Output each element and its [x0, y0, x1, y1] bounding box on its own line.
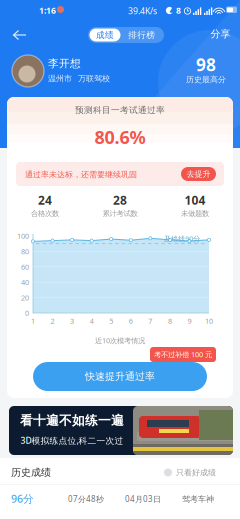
- staticText: 1:16: [39, 5, 56, 16]
- staticText: 20: [21, 293, 29, 303]
- staticText: 24: [38, 192, 52, 208]
- staticText: 排行榜: [128, 29, 155, 40]
- staticText: 0: [25, 308, 29, 318]
- staticText: 快速提升通过率: [85, 370, 155, 383]
- staticText: 9: [187, 316, 191, 326]
- button[interactable]: 成绩: [89, 28, 120, 41]
- staticText: 及格线90分: [164, 234, 200, 244]
- button[interactable]: Back: [8, 24, 34, 46]
- staticText: 考不过补偿 100 元: [154, 349, 212, 359]
- staticText: 只看好成绩: [176, 467, 216, 478]
- staticText: 3: [70, 316, 74, 326]
- staticText: 8: [168, 316, 172, 326]
- staticText: 累计考试数: [102, 209, 137, 218]
- staticText: 去提升: [186, 169, 210, 179]
- staticText: 40: [21, 277, 29, 287]
- button[interactable]: 快速提升通过率: [33, 362, 207, 391]
- button[interactable]: 看十遍不如练一遍: [9, 406, 233, 455]
- staticText: 2: [51, 316, 55, 326]
- staticText: 3D模拟练点位,科二一次过: [20, 435, 123, 446]
- staticText: 近10次模考情况: [95, 335, 145, 345]
- button[interactable]: 排行榜: [121, 28, 162, 41]
- staticText: 8: [176, 5, 181, 16]
- staticText: 5: [109, 316, 113, 326]
- staticText: 07分48秒: [68, 494, 104, 504]
- staticText: 04月03日: [125, 494, 161, 504]
- staticText: 分享: [210, 28, 230, 40]
- staticText: 98: [196, 53, 216, 76]
- staticText: 100: [17, 231, 29, 241]
- staticText: 1: [31, 316, 35, 326]
- staticText: 39.4K/s: [128, 5, 157, 17]
- staticText: 预测科目一考试通过率: [75, 104, 165, 115]
- staticText: 驾考车神: [182, 494, 214, 504]
- button[interactable]: 分享: [202, 26, 239, 42]
- staticText: 7: [148, 316, 152, 326]
- staticText: 4: [90, 316, 94, 326]
- staticText: 60: [21, 262, 29, 272]
- staticText: 10: [205, 316, 213, 326]
- button[interactable]: 去提升: [181, 167, 216, 181]
- staticText: 28: [113, 192, 127, 208]
- staticText: 96分: [11, 491, 34, 506]
- staticText: 温州市 万联驾校: [48, 73, 110, 84]
- staticText: 80: [21, 246, 29, 256]
- button[interactable]: 只看好成绩: [164, 467, 232, 478]
- staticText: 合格次数: [31, 209, 59, 218]
- staticText: 看十遍不如练一遍: [20, 412, 124, 428]
- staticText: 6: [129, 316, 133, 326]
- staticText: 104: [184, 192, 205, 208]
- staticText: 80.6%: [94, 125, 145, 149]
- staticText: 未做题数: [181, 209, 209, 218]
- staticText: 李开想: [48, 57, 81, 70]
- staticText: 通过率未达标，还需要继续巩固: [25, 169, 137, 180]
- staticText: 历史最高分: [186, 74, 226, 85]
- staticText: 成绩: [96, 29, 114, 40]
- staticText: 历史成绩: [11, 466, 51, 479]
